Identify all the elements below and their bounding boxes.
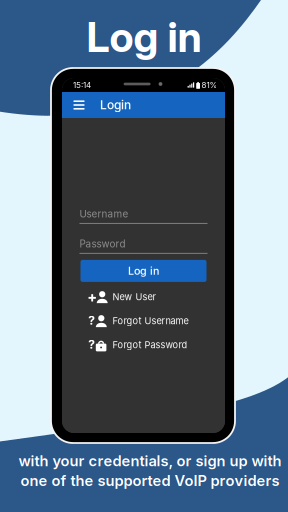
staticText: 81% — [201, 80, 217, 90]
button[interactable]: New User — [79, 285, 207, 309]
staticText: one of the supported VoIP providers — [20, 472, 279, 489]
staticText: 15:14 — [73, 80, 91, 90]
button[interactable]: Open navigation menu — [71, 95, 87, 115]
button[interactable]: Log in — [80, 260, 206, 282]
staticText: Forgot Username — [112, 315, 188, 326]
staticText: Login — [100, 98, 131, 112]
button[interactable]: ? — [79, 333, 207, 357]
button[interactable]: ? — [79, 309, 207, 333]
staticText: Password — [79, 238, 125, 250]
staticText: Forgot Password — [112, 339, 187, 350]
staticText: ? — [88, 337, 95, 351]
staticText: Log in — [86, 12, 201, 62]
staticText: Username — [79, 208, 128, 220]
staticText: ? — [88, 313, 95, 328]
staticText: Log in — [128, 264, 159, 277]
staticText: with your credentials, or sign up with — [18, 452, 281, 470]
staticText: New User — [112, 291, 155, 302]
